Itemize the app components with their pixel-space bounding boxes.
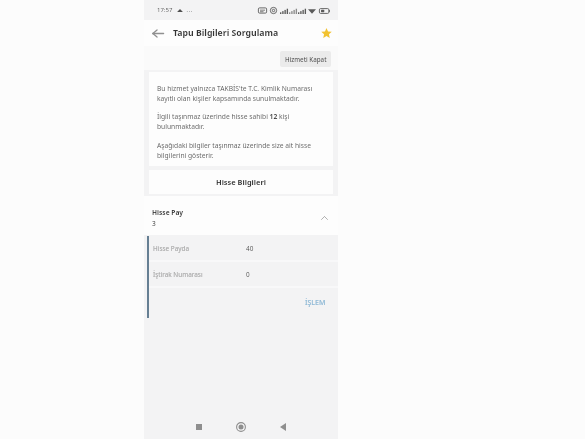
button[interactable]: Back <box>274 418 292 436</box>
staticText: 17:57 <box>157 6 173 14</box>
staticText: Tapu Bilgileri Sorgulama <box>173 27 279 39</box>
staticText: Hizmeti Kapat <box>285 55 327 63</box>
staticText: Hisse Bilgileri <box>216 177 266 187</box>
staticText: İŞLEM <box>305 298 326 308</box>
staticText: İlgili taşınmaz üzerinde hisse sahibi 12… <box>157 112 290 131</box>
button[interactable]: Recents <box>190 418 208 436</box>
staticText: 0 <box>246 270 250 279</box>
staticText: 3 <box>152 219 156 228</box>
button[interactable]: Home <box>232 418 250 436</box>
staticText: İştirak Numarası <box>153 270 246 279</box>
staticText: Hisse Pay <box>152 208 184 217</box>
staticText: 40 <box>246 244 254 253</box>
staticText: Hisse Payda <box>153 244 246 253</box>
staticText: Bu hizmet yalnızca TAKBİS'te T.C. Kimlik… <box>157 84 313 103</box>
button[interactable]: Hisse Bilgileri <box>149 170 333 194</box>
button[interactable]: Favorite <box>318 25 334 41</box>
button[interactable]: Hizmeti Kapat <box>280 51 331 67</box>
button[interactable]: İŞLEM <box>296 294 338 312</box>
staticText: ⋯ <box>186 7 192 14</box>
staticText: Aşağıdaki bilgiler taşınmaz üzerinde siz… <box>157 141 312 160</box>
button[interactable]: Back <box>149 24 167 42</box>
button[interactable]: Hisse Pay <box>144 196 338 235</box>
